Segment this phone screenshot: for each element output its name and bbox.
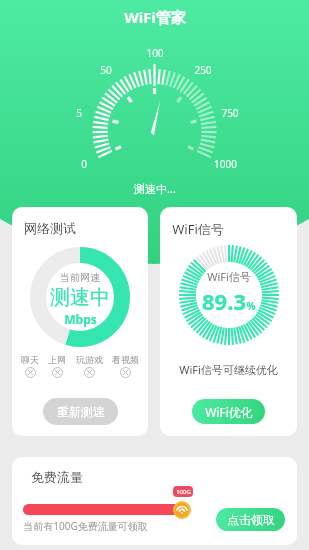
staticText: Mbps <box>64 311 97 327</box>
staticText: 免费流量 <box>31 469 83 485</box>
staticText: WiFi管家 <box>124 7 186 27</box>
staticText: 50 <box>100 63 112 77</box>
button[interactable]: 重新测速 <box>43 398 118 425</box>
staticText: 100 <box>146 46 164 60</box>
button[interactable]: WiFi优化 <box>192 399 265 424</box>
staticText: 250 <box>194 63 212 77</box>
staticText: 重新测速 <box>57 404 105 419</box>
staticText: 测速中... <box>134 181 176 196</box>
staticText: 100G <box>176 488 191 496</box>
staticText: 点击领取 <box>227 512 275 527</box>
staticText: 89.3 <box>202 286 246 316</box>
staticText: 测速中 <box>50 285 110 310</box>
staticText: % <box>246 299 256 313</box>
staticText: WiFi信号 <box>172 220 224 238</box>
staticText: 当前有100G免费流量可领取 <box>23 519 148 533</box>
staticText: 当前网速 <box>60 271 100 284</box>
staticText: 聊天 <box>21 354 39 365</box>
staticText: 上网 <box>48 354 66 365</box>
staticText: 玩游戏 <box>76 354 103 365</box>
staticText: 750 <box>221 106 239 120</box>
staticText: 看视频 <box>112 354 139 365</box>
staticText: WiFi优化 <box>205 404 253 420</box>
staticText: WiFi信号 <box>207 269 251 284</box>
staticText: 1000 <box>214 157 237 171</box>
staticText: 5 <box>76 106 82 120</box>
staticText: WiFi信号可继续优化 <box>179 362 278 377</box>
staticText: 网络测试 <box>24 220 76 236</box>
button[interactable]: 点击领取 <box>216 508 285 531</box>
staticText: 0 <box>81 157 87 171</box>
